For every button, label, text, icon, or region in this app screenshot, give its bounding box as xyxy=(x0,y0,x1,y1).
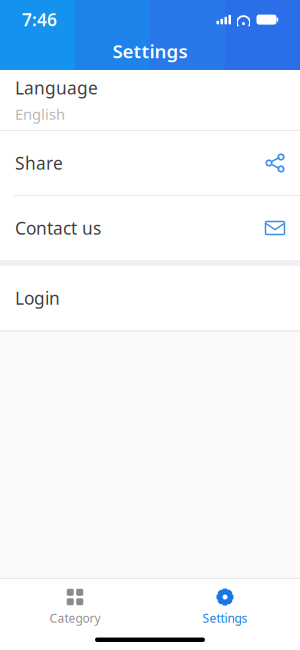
button[interactable]: Share xyxy=(0,131,300,195)
button[interactable]: Category xyxy=(0,585,150,629)
button[interactable]: Login xyxy=(0,266,300,330)
staticText: 7:46 xyxy=(22,8,57,31)
staticText: Category xyxy=(49,610,100,626)
button[interactable]: Language xyxy=(0,70,300,130)
button[interactable]: Settings xyxy=(150,585,300,629)
staticText: Settings xyxy=(202,610,247,626)
staticText: Language xyxy=(15,76,98,99)
staticText: Settings xyxy=(112,39,187,63)
staticText: Contact us xyxy=(15,216,101,239)
button[interactable]: Contact us xyxy=(0,196,300,260)
staticText: English xyxy=(15,104,65,124)
staticText: Share xyxy=(15,151,63,174)
staticText: Login xyxy=(15,286,60,309)
